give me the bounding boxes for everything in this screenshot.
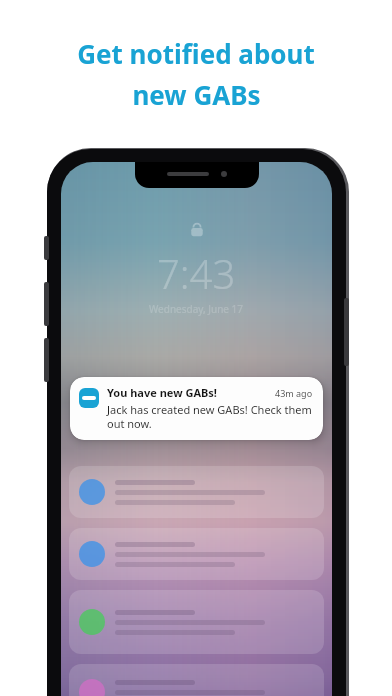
staticText: 43m ago xyxy=(275,387,313,399)
staticText: 7:43 xyxy=(157,246,236,300)
staticText: Get notified about xyxy=(77,36,315,71)
staticText: You have new GABs! xyxy=(107,385,217,400)
button[interactable]: You have new GABs! xyxy=(70,377,323,440)
staticText: Jack has created new GABs! Check them ou… xyxy=(107,402,313,431)
staticText: Wednesday, June 17 xyxy=(149,302,244,316)
staticText: new GABs xyxy=(132,77,261,112)
